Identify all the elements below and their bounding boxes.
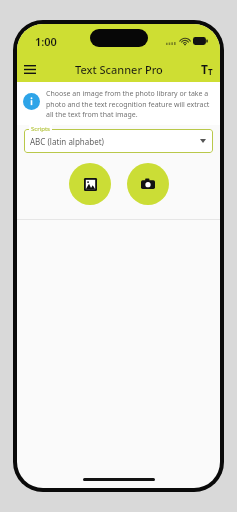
button[interactable]: ABC (latin alphabet): [24, 129, 213, 153]
button[interactable]: Menu: [17, 56, 43, 82]
staticText: T: [208, 66, 213, 77]
button[interactable]: Text size: [194, 56, 220, 82]
staticText: Scripts: [31, 125, 50, 133]
staticText: T: [201, 61, 208, 77]
button[interactable]: Take a photo: [127, 163, 169, 205]
staticText: 1:00: [35, 34, 57, 49]
staticText: ABC (latin alphabet): [30, 136, 104, 147]
staticText: Choose an image from the photo library o…: [46, 89, 212, 119]
staticText: Text Scanner Pro: [75, 62, 163, 77]
button[interactable]: Pick image from library: [69, 163, 111, 205]
